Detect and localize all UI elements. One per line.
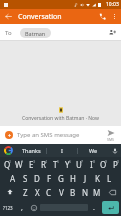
staticText: W <box>15 159 23 170</box>
button[interactable]: V <box>55 185 67 199</box>
staticText: L <box>107 173 112 184</box>
staticText: Type an SMS message <box>17 131 80 139</box>
staticText: 9 <box>105 159 108 164</box>
staticText: X <box>35 187 40 198</box>
button[interactable]: Z <box>19 185 31 199</box>
staticText: F <box>47 173 52 184</box>
staticText: B <box>70 187 76 198</box>
button[interactable]: H <box>67 171 79 185</box>
staticText: Conversation <box>18 12 62 22</box>
staticText: 2 <box>21 159 24 164</box>
staticText: I <box>90 159 93 170</box>
staticText: 5 <box>57 159 60 164</box>
button[interactable]: S <box>19 171 31 185</box>
button[interactable]: C <box>43 185 55 199</box>
button[interactable]: Attach <box>3 129 15 141</box>
button[interactable]: , <box>16 199 28 216</box>
staticText: Y <box>65 159 70 170</box>
staticText: H <box>70 173 76 184</box>
staticText: . <box>93 203 95 213</box>
staticText: 8 <box>93 159 96 164</box>
button[interactable]: More options <box>109 11 120 22</box>
staticText: N <box>82 187 89 198</box>
button[interactable]: I <box>47 144 77 157</box>
staticText: To <box>5 29 12 37</box>
button[interactable]: Enter <box>102 201 119 214</box>
button[interactable]: Batman <box>20 28 51 38</box>
staticText: O <box>100 159 107 170</box>
button[interactable]: We <box>78 144 108 157</box>
button[interactable]: O <box>97 157 109 171</box>
button[interactable]: Voice input <box>108 144 121 157</box>
button[interactable]: K <box>91 171 103 185</box>
button[interactable]: B <box>67 185 79 199</box>
button[interactable]: X <box>31 185 43 199</box>
staticText: 10:03 <box>106 1 119 8</box>
button[interactable]: M <box>91 185 103 199</box>
staticText: R <box>41 159 46 170</box>
button[interactable]: Add recipient <box>106 26 119 39</box>
staticText: 4 <box>45 159 48 164</box>
button[interactable]: Y <box>61 157 73 171</box>
button[interactable]: Type an SMS message <box>17 128 95 142</box>
button[interactable]: Back <box>3 11 14 22</box>
staticText: ?123 <box>3 205 13 211</box>
staticText: A <box>10 173 16 184</box>
staticText: , <box>21 203 23 213</box>
button[interactable]: I <box>85 157 97 171</box>
button[interactable]: A <box>7 171 19 185</box>
staticText: 3 <box>33 159 36 164</box>
button[interactable]: E <box>25 157 37 171</box>
staticText: S <box>23 173 28 184</box>
staticText: Batman <box>25 30 46 37</box>
button[interactable]: T <box>49 157 61 171</box>
button[interactable]: R <box>37 157 49 171</box>
staticText: We <box>89 147 98 154</box>
staticText: K <box>95 173 100 184</box>
staticText: V <box>59 187 64 198</box>
staticText: I <box>61 147 63 154</box>
button[interactable]: F <box>43 171 55 185</box>
staticText: T <box>53 159 58 170</box>
button[interactable]: J <box>79 171 91 185</box>
staticText: U <box>76 159 82 170</box>
staticText: J <box>84 173 87 184</box>
button[interactable]: D <box>31 171 43 185</box>
button[interactable]: U <box>73 157 85 171</box>
staticText: P <box>113 159 118 170</box>
button[interactable]: Backspace <box>103 185 121 199</box>
staticText: 1 <box>9 159 12 164</box>
staticText: 6 <box>69 159 72 164</box>
staticText: 0 <box>117 159 120 164</box>
button[interactable]: Emoji <box>28 199 40 216</box>
staticText: G <box>58 173 64 184</box>
button[interactable]: L <box>103 171 115 185</box>
staticText: E <box>29 159 34 170</box>
staticText: SMS <box>107 137 115 142</box>
staticText: Conversation with Batman · Now <box>22 115 99 122</box>
button[interactable]: ?123 <box>0 199 16 216</box>
button[interactable]: . <box>88 199 100 216</box>
staticText: D <box>34 173 40 184</box>
staticText: Thanks <box>22 147 41 154</box>
staticText: C <box>46 187 52 198</box>
button[interactable]: Q <box>0 157 13 171</box>
staticText: M <box>93 187 101 198</box>
button[interactable]: P <box>109 157 121 171</box>
button[interactable]: Send SMS <box>103 129 119 142</box>
button[interactable]: Shift <box>0 185 19 199</box>
staticText: Q <box>4 159 11 170</box>
button[interactable]: W <box>13 157 25 171</box>
staticText: 7 <box>81 159 84 164</box>
button[interactable]: N <box>79 185 91 199</box>
button[interactable]: Thanks <box>16 144 46 157</box>
button[interactable]: G <box>55 171 67 185</box>
button[interactable]: Call <box>96 10 109 23</box>
button[interactable]: Google <box>0 144 16 157</box>
staticText: Z <box>23 187 28 198</box>
